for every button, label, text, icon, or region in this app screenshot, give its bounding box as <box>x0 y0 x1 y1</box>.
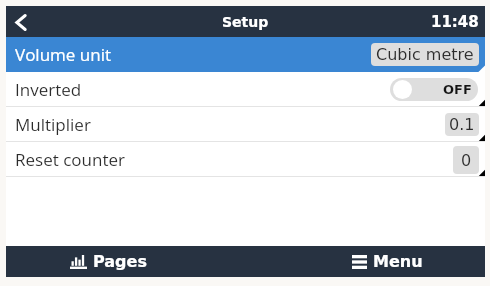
staticText: 0.1 <box>449 115 475 134</box>
staticText: Pages <box>93 252 147 271</box>
button[interactable]: Inverted toggle, OFF <box>390 78 478 101</box>
staticText: Volume unit <box>15 43 111 66</box>
button[interactable]: Multiplier <box>6 107 485 142</box>
staticText: Inverted <box>15 78 82 101</box>
button[interactable]: Back <box>6 6 36 37</box>
staticText: Menu <box>373 252 423 271</box>
staticText: 11:48 <box>431 13 479 30</box>
staticText: OFF <box>443 82 472 97</box>
button[interactable]: Pages <box>6 246 245 277</box>
staticText: Reset counter <box>15 148 125 171</box>
staticText: Cubic metre <box>376 45 474 64</box>
button[interactable]: Volume unit <box>6 37 485 72</box>
button[interactable]: Menu <box>245 246 485 277</box>
button[interactable]: Reset counter <box>6 142 485 177</box>
button[interactable]: Inverted <box>6 72 485 107</box>
staticText: 0 <box>461 151 472 170</box>
staticText: Setup <box>222 14 269 30</box>
staticText: Multiplier <box>15 113 91 136</box>
